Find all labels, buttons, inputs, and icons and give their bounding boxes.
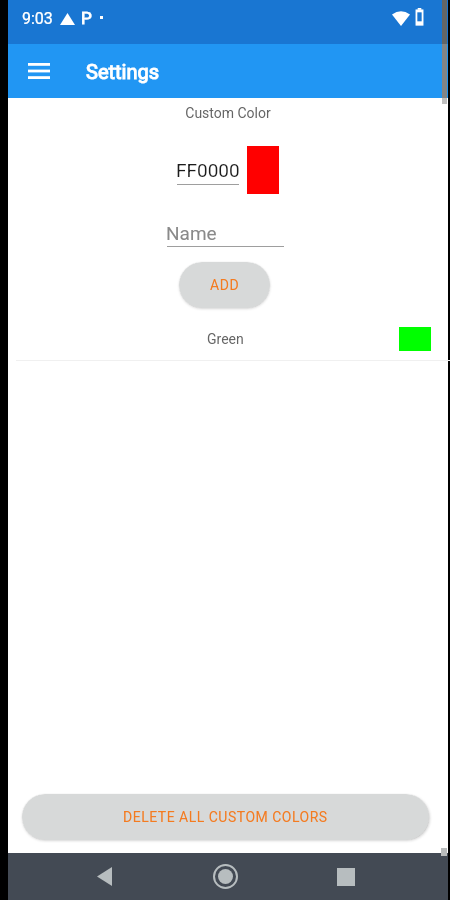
staticText: FF0000 [176, 159, 240, 181]
staticText: Name [166, 222, 217, 244]
staticText: DELETE ALL CUSTOM COLORS [123, 809, 328, 825]
staticText: 9:03 [22, 9, 53, 28]
button[interactable]: Home [201, 853, 249, 900]
staticText: Custom Color [8, 105, 448, 121]
staticText: ADD [210, 277, 240, 293]
button[interactable]: Green [8, 320, 448, 358]
button[interactable]: Recent apps [322, 853, 370, 900]
staticText: Green [207, 331, 244, 347]
button[interactable]: ADD [179, 262, 270, 308]
button[interactable]: Back [80, 853, 128, 900]
staticText: P [81, 8, 92, 28]
button[interactable]: Open navigation menu [18, 50, 60, 92]
button[interactable]: DELETE ALL CUSTOM COLORS [22, 794, 429, 840]
staticText: Settings [86, 60, 160, 83]
